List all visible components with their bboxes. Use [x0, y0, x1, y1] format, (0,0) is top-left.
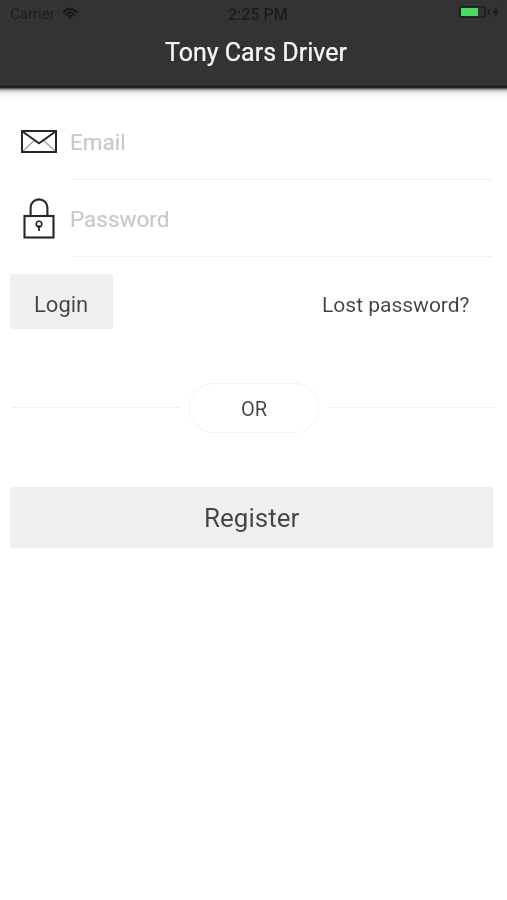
staticText: Login	[34, 292, 89, 318]
other: Email	[21, 130, 57, 153]
other: Battery charging	[459, 6, 503, 20]
staticText: 2:25 PM	[228, 5, 288, 24]
button[interactable]: Register	[10, 487, 493, 548]
other: Password	[24, 198, 54, 239]
staticText: Tony Cars Driver	[165, 38, 347, 67]
staticText: Lost password?	[322, 293, 470, 318]
button[interactable]: Lost password?	[313, 283, 479, 327]
staticText: OR	[241, 397, 268, 420]
staticText: Carrier	[10, 5, 55, 23]
other: Wi-Fi signal	[61, 4, 81, 18]
staticText: Password	[70, 206, 170, 232]
button[interactable]: Password	[0, 180, 507, 257]
button[interactable]: Email	[0, 103, 507, 180]
staticText: Register	[204, 503, 300, 533]
button[interactable]: Login	[10, 274, 113, 329]
staticText: Email	[70, 129, 126, 155]
